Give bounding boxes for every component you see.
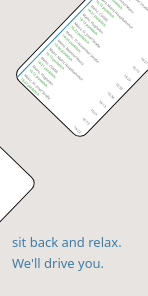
staticText: 16:33 pünktlich	[61, 33, 83, 54]
staticText: Mainz, TC-November Straße	[65, 29, 101, 64]
staticText: Mainz, COSMI	[40, 55, 60, 75]
staticText: 16:21	[140, 56, 148, 65]
staticText: Mainz, Bahnhof Mainz	[107, 0, 136, 15]
staticText: Mainz, Flughafen	[31, 64, 55, 87]
staticText: 16:34 pünktlich	[53, 42, 75, 63]
staticText: Mainz, COSMI	[90, 3, 110, 23]
staticText: Mainz, TC-November Straße	[115, 0, 148, 12]
staticText: 16:22 pünktlich	[20, 76, 41, 97]
staticText: 16:33	[115, 82, 124, 91]
staticText: 16:34	[106, 90, 116, 100]
staticText: 16:13	[98, 99, 108, 109]
staticText: Mainz, Flughafen	[82, 12, 105, 35]
staticText: 16:33 pünktlich	[111, 0, 133, 2]
staticText: Mainz, St. Josef Straße	[73, 21, 103, 49]
staticText: 16:21 pünktlich	[36, 59, 58, 80]
staticText: 16:13 pünktlich	[28, 67, 50, 88]
staticText: Mainz, Mainz Hauptbahnhof	[48, 47, 85, 82]
staticText: We'll drive you.	[12, 254, 105, 272]
staticText: 16:21	[90, 107, 99, 117]
staticText: sit back and relax.	[12, 233, 122, 251]
staticText: 16:22	[123, 73, 133, 83]
staticText: 16:34 pünktlich	[103, 0, 125, 11]
staticText: Mainz, Mainz Hauptbahnhof	[98, 0, 135, 30]
staticText: 16:13 pünktlich	[78, 16, 100, 37]
staticText: 16:13 pünktlich	[45, 50, 66, 71]
staticText: 16:22 pünktlich	[70, 24, 91, 45]
staticText: 16:22	[73, 125, 83, 134]
staticText: 16:13	[81, 116, 91, 126]
staticText: 16:13 pünktlich	[95, 0, 116, 19]
staticText: Mainz, Bahnhof Mainz	[56, 38, 86, 67]
staticText: 16:21 pünktlich	[86, 7, 108, 28]
staticText: 16:13	[131, 64, 141, 74]
staticText: Mainz, St. Josef Straße	[23, 73, 53, 101]
